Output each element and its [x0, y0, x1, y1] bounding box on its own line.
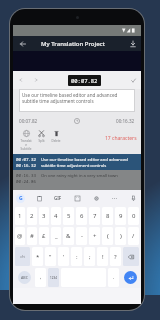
- staticText: 00:07.82: [19, 118, 38, 124]
- button[interactable]: Download: [127, 38, 138, 49]
- button[interactable]: !: [97, 247, 108, 266]
- button[interactable]: Google Search: [16, 194, 25, 203]
- staticText: 8: [106, 212, 110, 220]
- staticText: =\<: [20, 254, 26, 259]
- staticText: My Translation Project: [41, 40, 105, 48]
- button[interactable]: 2: [27, 207, 37, 225]
- button[interactable]: -: [76, 227, 87, 245]
- staticText: ': [63, 253, 65, 261]
- staticText: !: [102, 253, 104, 261]
- staticText: 17 characters: [105, 135, 137, 142]
- button[interactable]: #: [27, 227, 37, 245]
- staticText: 6: [80, 212, 84, 220]
- staticText: Translate Subtitle: [20, 139, 32, 151]
- staticText: (: [107, 232, 109, 240]
- staticText: ?: [114, 253, 117, 261]
- button[interactable]: 7: [89, 207, 100, 225]
- button[interactable]: ": [45, 247, 56, 266]
- staticText: ,: [40, 274, 42, 281]
- staticText: +: [93, 232, 97, 240]
- staticText: 7: [93, 212, 97, 220]
- staticText: Use our timeline based editor and advanc…: [41, 157, 138, 168]
- button[interactable]: Back: [17, 38, 28, 49]
- button[interactable]: More options: [110, 194, 119, 203]
- staticText: Use our timeline based editor and advanc…: [22, 92, 132, 105]
- button[interactable]: ;: [84, 247, 95, 266]
- button[interactable]: Settings: [92, 194, 101, 203]
- button[interactable]: /: [128, 227, 139, 245]
- button[interactable]: 6: [76, 207, 87, 225]
- staticText: ;: [89, 253, 91, 261]
- button[interactable]: 9: [115, 207, 126, 225]
- staticText: .: [113, 274, 115, 281]
- staticText: ABC: [21, 275, 28, 280]
- staticText: 0: [132, 212, 136, 220]
- staticText: /: [132, 232, 135, 240]
- button[interactable]: @: [15, 227, 25, 245]
- staticText: 00:16.32: [16, 163, 37, 169]
- button[interactable]: Confirm: [127, 74, 139, 86]
- button[interactable]: GIF: [53, 194, 63, 202]
- staticText: 9: [119, 212, 123, 220]
- button[interactable]: .: [108, 268, 119, 287]
- button[interactable]: ': [58, 247, 69, 266]
- staticText: ): [120, 232, 122, 240]
- button[interactable]: 00:07.32: [16, 154, 138, 170]
- staticText: *: [36, 253, 40, 261]
- button[interactable]: 1234: [48, 268, 59, 287]
- staticText: -: [81, 232, 83, 240]
- button[interactable]: Translate Subtitle: [20, 129, 32, 151]
- staticText: 00:07.82: [71, 77, 98, 84]
- staticText: On one rainy night in a very small town: [41, 173, 118, 179]
- staticText: G: [19, 195, 23, 202]
- staticText: ": [49, 253, 52, 261]
- button[interactable]: Previous subtitle: [15, 74, 27, 86]
- button[interactable]: Enter: [124, 271, 137, 284]
- button[interactable]: £: [39, 227, 49, 245]
- staticText: 1234: [50, 276, 57, 280]
- button[interactable]: 1: [15, 207, 25, 225]
- staticText: GIF: [54, 195, 62, 201]
- button[interactable]: *: [32, 247, 43, 266]
- button[interactable]: 5: [63, 207, 74, 225]
- button[interactable]: +: [89, 227, 100, 245]
- button[interactable]: Delete: [50, 129, 62, 143]
- button[interactable]: Voice input: [129, 194, 138, 203]
- button[interactable]: &: [63, 227, 74, 245]
- button[interactable]: :: [71, 247, 82, 266]
- staticText: 00:16.32: [116, 118, 135, 124]
- staticText: _: [55, 232, 58, 240]
- staticText: 5: [67, 212, 71, 220]
- button[interactable]: ?: [110, 247, 121, 266]
- button[interactable]: 4: [51, 207, 61, 225]
- button[interactable]: Backspace: [123, 247, 139, 266]
- button[interactable]: ABC: [18, 271, 31, 284]
- staticText: 00:24.86: [16, 179, 37, 185]
- staticText: #: [30, 232, 34, 240]
- staticText: 2: [30, 212, 34, 220]
- staticText: 00:16.33: [16, 173, 37, 179]
- staticText: Split: [38, 139, 45, 143]
- button[interactable]: ,: [35, 268, 46, 287]
- button[interactable]: =\<: [15, 247, 30, 266]
- staticText: @: [17, 232, 23, 240]
- button[interactable]: (: [102, 227, 113, 245]
- button[interactable]: 00:16.33: [16, 170, 138, 190]
- button[interactable]: Clipboard: [35, 194, 44, 203]
- staticText: £: [42, 232, 46, 240]
- staticText: 4: [54, 212, 58, 220]
- button[interactable]: Stickers: [73, 194, 82, 203]
- staticText: 1: [18, 212, 22, 220]
- button[interactable]: 0: [128, 207, 139, 225]
- staticText: 3: [42, 212, 46, 220]
- button[interactable]: 8: [102, 207, 113, 225]
- button[interactable]: ): [115, 227, 126, 245]
- button[interactable]: Split: [35, 129, 47, 143]
- button[interactable]: _: [51, 227, 61, 245]
- staticText: 00:07.32: [16, 157, 37, 163]
- staticText: &: [66, 232, 71, 240]
- button[interactable]: Next subtitle: [30, 74, 42, 86]
- button[interactable]: Use our timeline based editor and advanc…: [22, 92, 132, 109]
- button[interactable]: 3: [39, 207, 49, 225]
